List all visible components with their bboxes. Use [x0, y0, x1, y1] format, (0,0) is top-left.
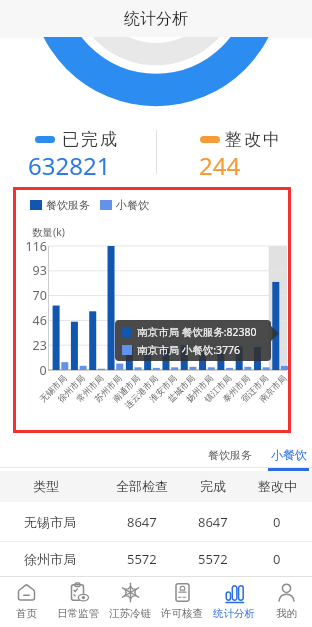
button[interactable]: 首页	[0, 582, 52, 627]
staticText: 徐州市局	[24, 551, 76, 567]
staticText: 5572	[198, 550, 228, 568]
button[interactable]: 我的	[260, 582, 312, 627]
staticText: 244	[199, 149, 241, 182]
staticText: 632821	[28, 149, 111, 182]
staticText: 无锡市局	[24, 514, 76, 530]
staticText: 8647	[127, 513, 157, 531]
staticText: 南京市局 小餐饮:3776	[137, 343, 241, 357]
staticText: 首页	[16, 607, 37, 620]
staticText: 类型	[33, 478, 59, 494]
staticText: 许可核查	[161, 607, 203, 620]
staticText: 数量(k)	[32, 225, 65, 239]
staticText: 全部检查	[116, 478, 168, 494]
button[interactable]: 餐饮服务	[202, 442, 258, 468]
staticText: 8647	[198, 513, 228, 531]
button[interactable]: 统计分析	[208, 582, 260, 627]
staticText: 日常监管	[57, 607, 99, 620]
button[interactable]: 许可核查	[156, 582, 208, 627]
staticText: 餐饮服务	[46, 198, 90, 212]
staticText: 统计分析	[213, 607, 255, 620]
staticText: 统计分析	[124, 9, 188, 29]
staticText: 0	[273, 513, 281, 531]
button[interactable]: 无锡市局	[0, 502, 312, 541]
button[interactable]: 江苏冷链	[104, 582, 156, 627]
staticText: 江苏冷链	[109, 607, 151, 620]
staticText: 0	[273, 550, 281, 568]
staticText: 整改中	[258, 478, 297, 494]
staticText: 5572	[127, 550, 157, 568]
staticText: 小餐饮	[271, 447, 307, 462]
button[interactable]: 日常监管	[52, 582, 104, 627]
staticText: 小餐饮	[116, 198, 149, 212]
button[interactable]: 徐州市局	[0, 542, 312, 576]
button[interactable]: 小餐饮	[265, 441, 312, 468]
staticText: 我的	[276, 607, 297, 620]
staticText: 已完成	[61, 129, 118, 150]
staticText: 整改中	[224, 129, 281, 150]
staticText: 餐饮服务	[208, 448, 252, 462]
staticText: 完成	[200, 478, 226, 494]
staticText: 南京市局 餐饮服务:82380	[137, 325, 257, 339]
